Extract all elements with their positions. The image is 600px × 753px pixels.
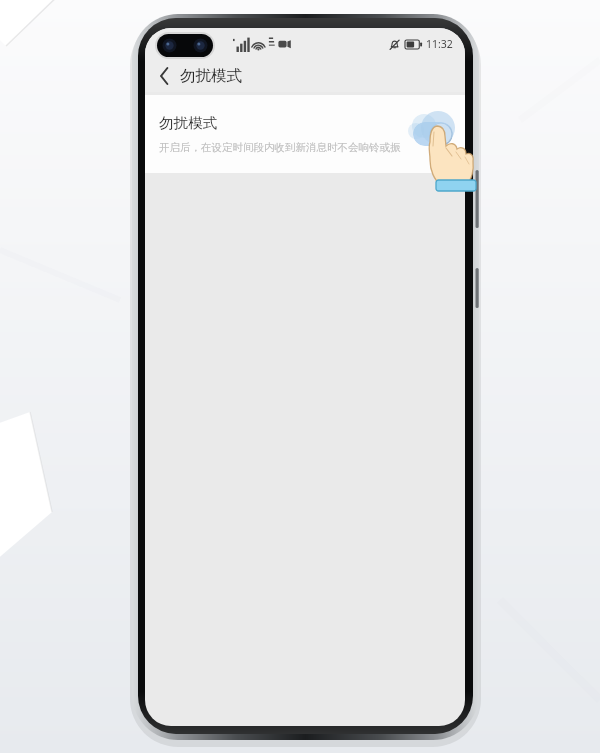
staticText: 勿扰模式 <box>180 66 242 86</box>
staticText: 11:32 <box>426 37 453 51</box>
button[interactable]: 勿扰模式 <box>145 95 465 173</box>
button[interactable]: Back <box>150 62 178 90</box>
button[interactable]: Toggle Do Not Disturb <box>413 122 453 146</box>
staticText: 勿扰模式 <box>159 114 217 132</box>
staticText: 开启后，在设定时间段内收到新消息时不会响铃或振动 <box>159 141 407 154</box>
